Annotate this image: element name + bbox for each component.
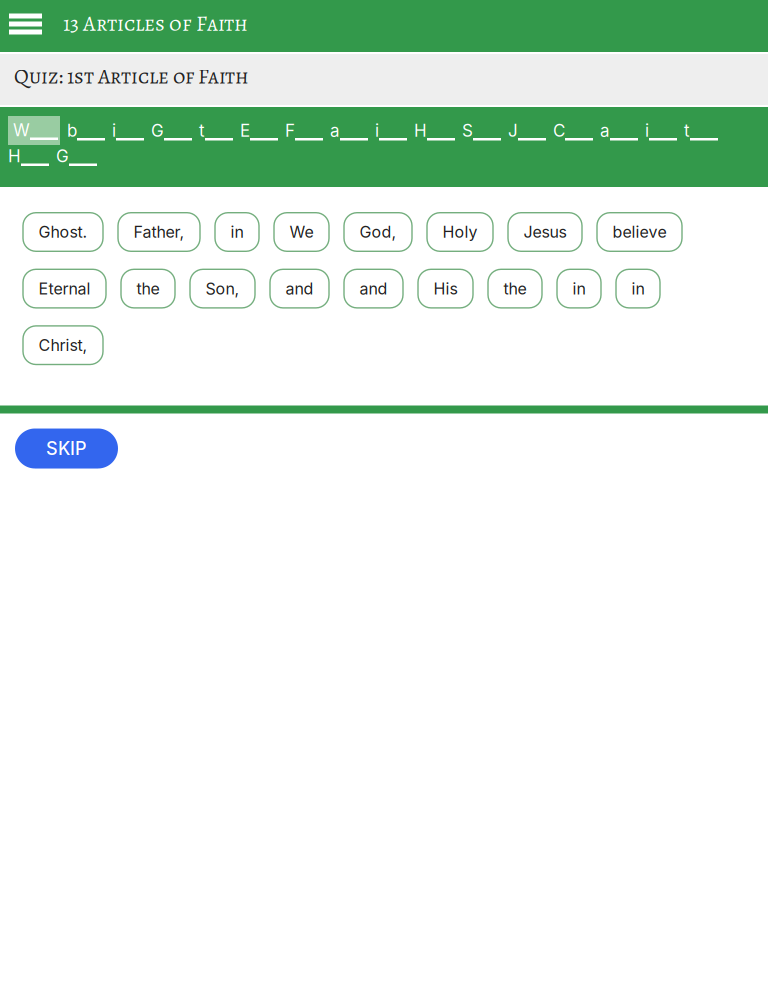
staticText: Ghost.: [38, 222, 87, 242]
staticText: F: [285, 120, 295, 141]
button[interactable]: in: [557, 269, 601, 308]
button[interactable]: Jesus: [508, 213, 582, 251]
staticText: i: [645, 120, 649, 141]
staticText: and: [285, 279, 313, 298]
staticText: Son,: [205, 279, 239, 298]
button[interactable]: the: [121, 269, 175, 308]
staticText: S: [462, 120, 473, 141]
button[interactable]: believe: [597, 213, 682, 251]
staticText: H: [414, 120, 427, 141]
button[interactable]: His: [418, 269, 473, 308]
staticText: a: [600, 120, 610, 141]
staticText: i: [375, 120, 379, 141]
button[interactable]: Father,: [118, 213, 200, 251]
staticText: J: [508, 120, 518, 141]
button[interactable]: Ghost.: [23, 213, 103, 251]
staticText: 13 Articles of Faith: [63, 9, 248, 38]
staticText: in: [631, 279, 644, 298]
staticText: Father,: [133, 222, 184, 242]
button[interactable]: in: [215, 213, 259, 251]
button[interactable]: Christ,: [23, 326, 103, 364]
button[interactable]: Eternal: [23, 269, 106, 308]
button[interactable]: Menu: [0, 0, 63, 52]
staticText: G: [151, 120, 164, 141]
staticText: b: [67, 120, 77, 141]
staticText: believe: [612, 222, 666, 242]
staticText: E: [240, 120, 250, 141]
staticText: and: [359, 279, 387, 298]
staticText: Quiz: 1st Article of Faith: [14, 62, 249, 91]
button[interactable]: God,: [344, 213, 412, 251]
staticText: i: [112, 120, 116, 141]
staticText: Holy: [442, 222, 477, 242]
button[interactable]: and: [270, 269, 329, 308]
staticText: H: [8, 146, 21, 166]
button[interactable]: the: [488, 269, 542, 308]
staticText: in: [572, 279, 585, 298]
staticText: in: [230, 222, 243, 242]
staticText: His: [433, 279, 457, 298]
button[interactable]: in: [616, 269, 660, 308]
staticText: G: [56, 146, 69, 166]
staticText: We: [289, 222, 313, 242]
staticText: Eternal: [38, 279, 90, 298]
staticText: a: [330, 120, 340, 141]
button[interactable]: SKIP: [15, 428, 118, 468]
staticText: the: [503, 279, 526, 298]
staticText: C: [553, 120, 565, 141]
staticText: the: [136, 279, 159, 298]
staticText: t: [684, 120, 690, 141]
button[interactable]: and: [344, 269, 403, 308]
button[interactable]: Son,: [190, 269, 255, 308]
staticText: Jesus: [523, 222, 566, 242]
staticText: W: [13, 120, 30, 140]
staticText: Christ,: [38, 335, 87, 355]
button[interactable]: We: [274, 213, 329, 251]
button[interactable]: Holy: [427, 213, 493, 251]
staticText: God,: [359, 222, 396, 242]
staticText: t: [199, 120, 205, 141]
staticText: SKIP: [46, 438, 87, 459]
